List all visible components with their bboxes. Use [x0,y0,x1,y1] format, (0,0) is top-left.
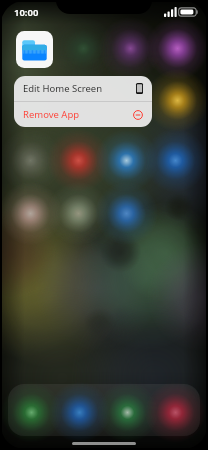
staticText: Edit Home Screen [23,82,103,95]
button[interactable]: Files [16,31,53,68]
staticText: Remove App [23,108,80,121]
staticText: 10:00 [14,6,39,19]
button[interactable]: Remove App [14,102,152,127]
button[interactable]: Edit Home Screen [14,76,152,101]
